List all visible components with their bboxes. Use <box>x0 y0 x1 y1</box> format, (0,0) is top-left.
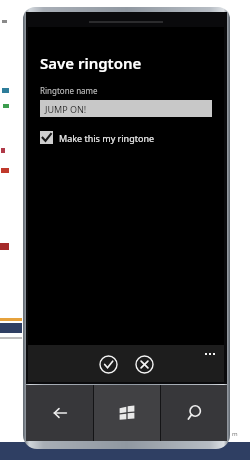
staticText: Save ringtone <box>40 53 142 73</box>
button[interactable]: JUMP ON! <box>40 100 212 117</box>
button[interactable]: Make this my ringtone <box>40 131 155 144</box>
button[interactable]: Search <box>161 385 227 441</box>
button[interactable]: Save <box>95 351 121 377</box>
button[interactable]: Start <box>94 385 160 441</box>
button[interactable]: More <box>202 350 218 358</box>
button[interactable]: Back <box>26 385 93 441</box>
button[interactable]: Cancel <box>131 351 157 377</box>
staticText: Make this my ringtone <box>59 132 155 144</box>
staticText: Ringtone name <box>40 85 98 96</box>
staticText: m <box>232 430 238 438</box>
staticText: JUMP ON! <box>45 103 87 115</box>
